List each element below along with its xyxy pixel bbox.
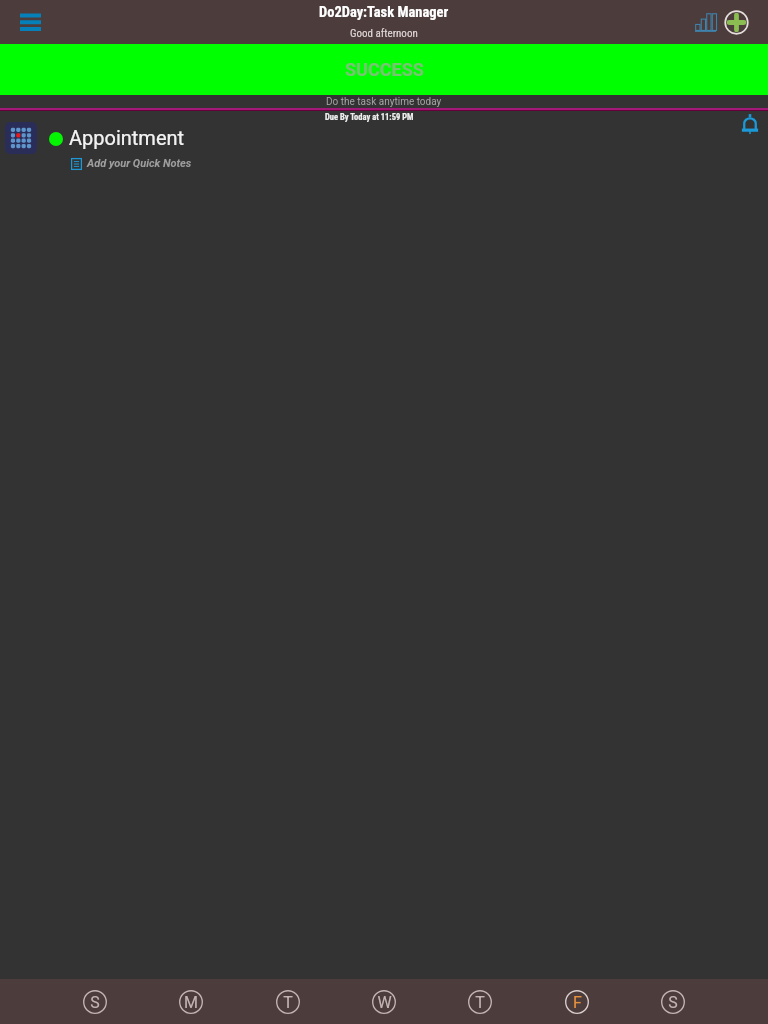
button[interactable]: T — [463, 985, 497, 1019]
button[interactable]: S — [78, 985, 112, 1019]
button[interactable]: Open navigation menu — [12, 4, 48, 40]
button[interactable]: T — [271, 985, 305, 1019]
staticText: Good afternoon — [350, 27, 418, 40]
button[interactable]: M — [174, 985, 208, 1019]
staticText: SUCCESS — [345, 59, 424, 80]
staticText: T — [283, 993, 293, 1012]
button[interactable]: Statistics — [691, 6, 720, 38]
staticText: Appointment — [69, 126, 185, 149]
staticText: T — [475, 993, 485, 1012]
staticText: F — [573, 993, 582, 1012]
staticText: S — [668, 993, 678, 1012]
staticText: Add your Quick Notes — [87, 157, 192, 170]
button[interactable]: W — [367, 985, 401, 1019]
button[interactable]: Add your Quick Notes — [71, 157, 192, 170]
button[interactable]: S — [656, 985, 690, 1019]
staticText: Due By Today at 11:59 PM — [325, 112, 414, 122]
button[interactable]: Reminder — [736, 110, 764, 138]
staticText: Do the task anytime today — [326, 96, 442, 108]
button[interactable]: Due By Today at 11:59 PM — [0, 111, 768, 191]
button[interactable]: Add task — [720, 6, 752, 38]
staticText: W — [377, 993, 392, 1012]
staticText: Do2Day:Task Manager — [319, 4, 449, 21]
button[interactable]: F — [560, 985, 594, 1019]
staticText: M — [184, 993, 198, 1012]
staticText: S — [90, 993, 100, 1012]
